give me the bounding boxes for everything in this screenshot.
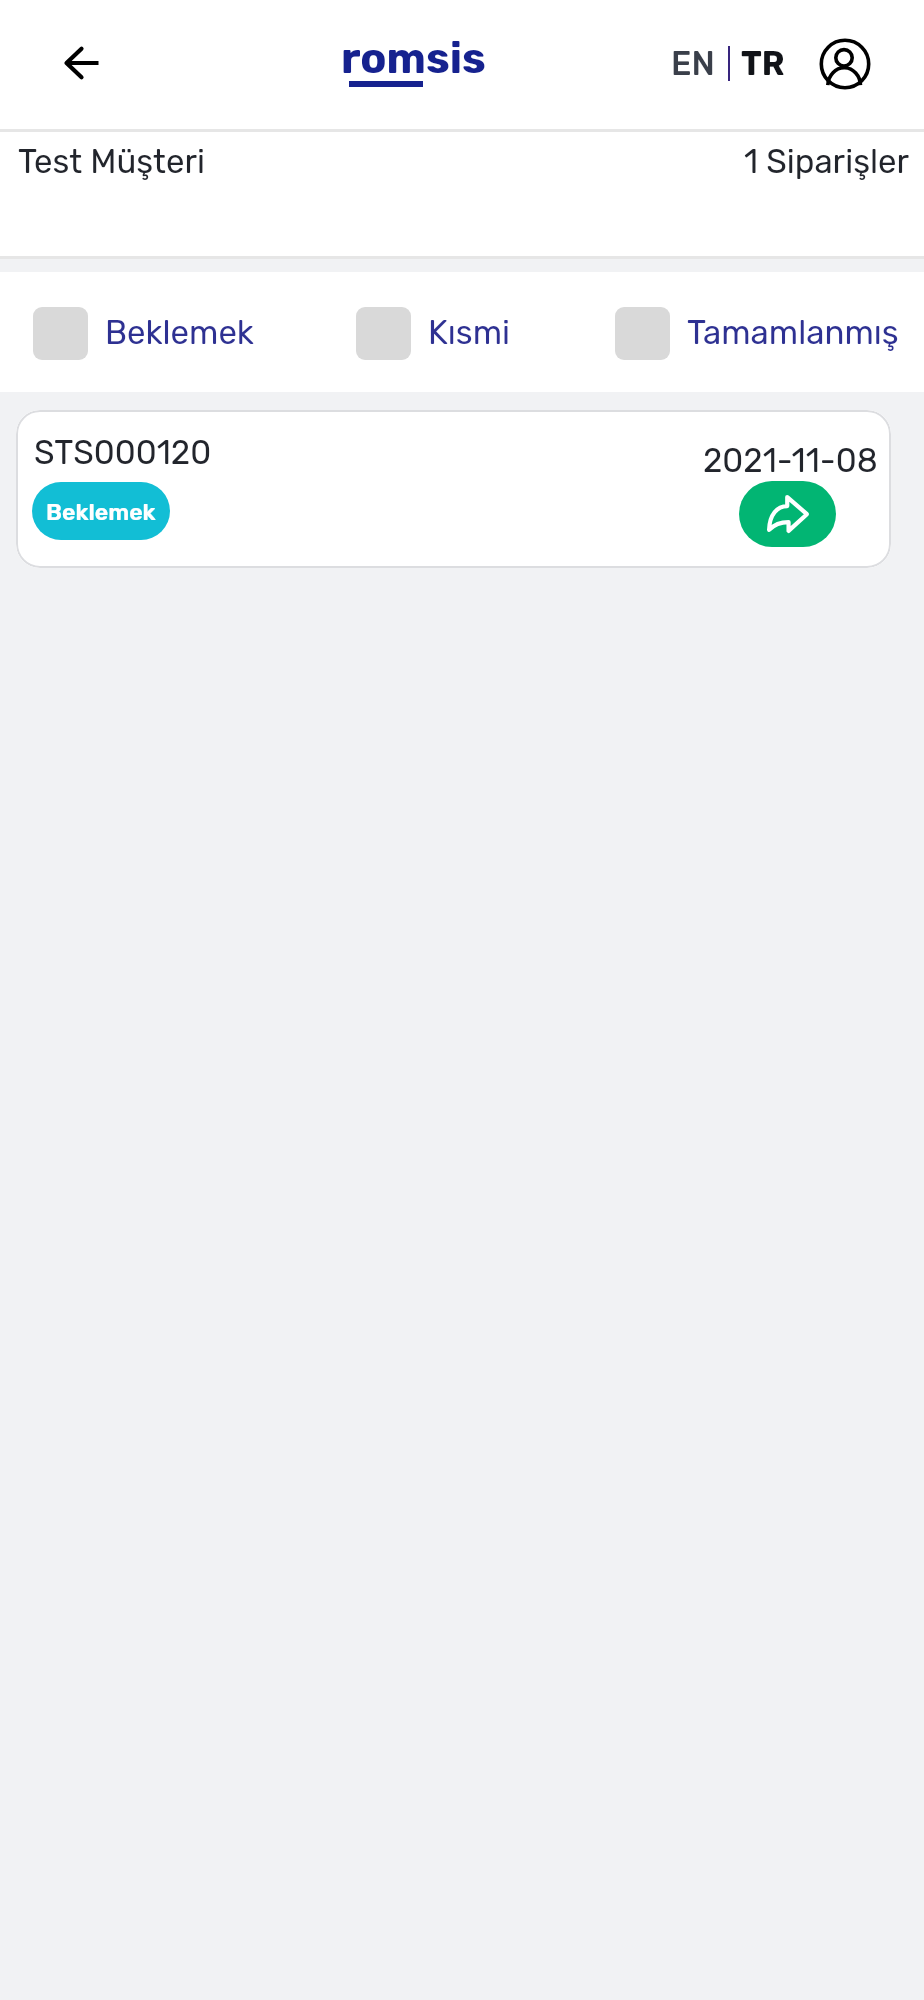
staticText: EN xyxy=(671,44,715,83)
button[interactable]: Back xyxy=(49,31,113,95)
button[interactable] xyxy=(603,295,682,372)
button[interactable] xyxy=(21,295,100,372)
staticText: 2021-11-08 xyxy=(703,441,878,480)
button[interactable]: EN xyxy=(671,36,785,90)
button[interactable] xyxy=(344,295,423,372)
staticText: Test Müşteri xyxy=(18,142,206,181)
staticText: Kısmi xyxy=(428,313,510,352)
button[interactable]: Profile xyxy=(813,32,877,96)
staticText: Beklemek xyxy=(46,498,156,525)
button[interactable]: STS000120 xyxy=(16,410,891,568)
staticText: romsis xyxy=(341,33,486,84)
button[interactable]: Share xyxy=(739,481,836,547)
staticText: STS000120 xyxy=(34,433,212,472)
staticText: TR xyxy=(741,44,785,83)
staticText: Tamamlanmış xyxy=(687,313,899,352)
staticText: Beklemek xyxy=(105,313,254,352)
staticText: 1 Siparişler xyxy=(744,142,909,181)
